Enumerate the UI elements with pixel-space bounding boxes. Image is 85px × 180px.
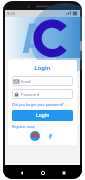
staticText: Password: [21, 92, 40, 97]
button[interactable]: Home: [38, 168, 47, 177]
staticText: Login: [12, 64, 73, 72]
button[interactable]: Password: [12, 89, 73, 99]
button[interactable]: Login: [12, 110, 73, 121]
staticText: Register now!: [12, 124, 35, 129]
button[interactable]: Back: [17, 168, 26, 177]
staticText: 9:30: [7, 11, 15, 16]
staticText: Email: [21, 79, 32, 84]
button[interactable]: Sign in with Google: [30, 131, 40, 141]
staticText: Did you forget your password?: [12, 102, 64, 107]
button[interactable]: Register now!: [12, 124, 73, 129]
button[interactable]: Email: [12, 76, 73, 86]
button[interactable]: Did you forget your password?: [12, 102, 73, 107]
staticText: Login: [36, 112, 50, 119]
button[interactable]: Recent apps: [59, 168, 68, 177]
button[interactable]: Sign in with social account: [45, 131, 55, 141]
